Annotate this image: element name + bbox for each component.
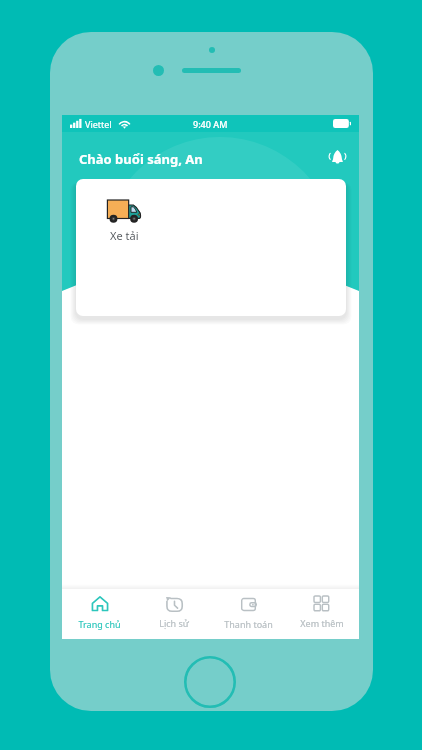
button[interactable]: Xem thêm <box>285 585 359 640</box>
button[interactable]: Notifications <box>323 142 351 170</box>
staticText: Xe tải <box>110 228 139 243</box>
staticText: Viettel <box>85 118 112 130</box>
staticText: Lịch sử <box>159 617 189 629</box>
staticText: Chào buổi sáng, An <box>79 150 203 168</box>
button[interactable]: Trang chủ <box>62 585 137 640</box>
staticText: Trang chủ <box>78 618 121 630</box>
button[interactable]: Thanh toán <box>211 585 285 640</box>
button[interactable]: Lịch sử <box>137 585 211 640</box>
button[interactable]: Xe tải <box>107 199 141 243</box>
staticText: Xem thêm <box>300 617 344 629</box>
staticText: 9:40 AM <box>193 118 228 130</box>
staticText: Thanh toán <box>224 618 273 630</box>
